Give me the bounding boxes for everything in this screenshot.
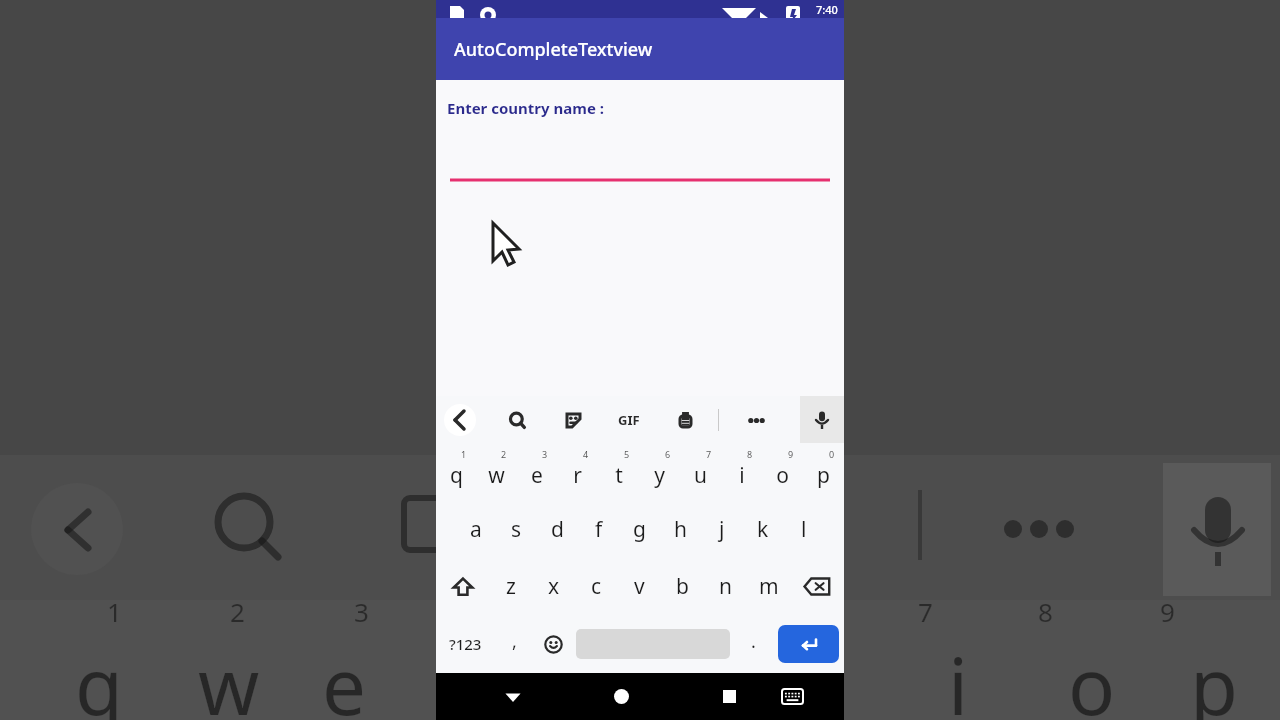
- staticText: h: [674, 515, 687, 544]
- staticText: q: [450, 461, 463, 490]
- staticText: 9: [788, 448, 794, 460]
- staticText: 7:40: [816, 2, 838, 17]
- staticText: ,: [512, 629, 517, 654]
- button[interactable]: z: [489, 558, 532, 615]
- button[interactable]: Stickers: [558, 405, 588, 435]
- button[interactable]: 2: [476, 443, 516, 501]
- staticText: w: [488, 461, 505, 490]
- staticText: s: [511, 515, 522, 544]
- staticText: 3: [542, 448, 548, 460]
- button[interactable]: Home: [594, 673, 648, 720]
- staticText: 9: [1160, 594, 1175, 629]
- staticText: Enter country name :: [447, 98, 604, 118]
- button[interactable]: 5: [598, 443, 639, 501]
- staticText: u: [694, 461, 707, 490]
- button[interactable]: a: [455, 501, 496, 558]
- button[interactable]: More options: [741, 405, 771, 435]
- staticText: n: [719, 572, 732, 601]
- button[interactable]: m: [747, 558, 790, 615]
- staticText: 7: [706, 448, 712, 460]
- button[interactable]: GIF: [614, 405, 644, 435]
- staticText: y: [654, 461, 665, 490]
- staticText: c: [591, 572, 602, 601]
- staticText: x: [548, 572, 560, 601]
- button[interactable]: Recents: [702, 673, 756, 720]
- staticText: i: [739, 461, 745, 490]
- staticText: f: [595, 515, 603, 544]
- staticText: p: [817, 461, 830, 490]
- button[interactable]: g: [619, 501, 660, 558]
- staticText: i: [948, 632, 969, 720]
- button[interactable]: v: [618, 558, 661, 615]
- button[interactable]: j: [701, 501, 742, 558]
- button[interactable]: Back: [444, 404, 476, 436]
- staticText: AutoCompleteTextview: [454, 37, 653, 62]
- staticText: 0: [829, 448, 835, 460]
- staticText: w: [198, 632, 260, 720]
- staticText: r: [573, 461, 582, 490]
- button[interactable]: [450, 154, 830, 184]
- button[interactable]: 7: [680, 443, 721, 501]
- button[interactable]: Backspace: [790, 558, 844, 615]
- button[interactable]: k: [742, 501, 783, 558]
- button[interactable]: Hide keyboard: [486, 673, 540, 720]
- staticText: e: [322, 632, 366, 720]
- button[interactable]: h: [660, 501, 701, 558]
- staticText: 2: [230, 594, 245, 629]
- button[interactable]: Enter: [778, 625, 839, 663]
- staticText: t: [615, 461, 623, 490]
- button[interactable]: c: [575, 558, 618, 615]
- staticText: g: [633, 515, 646, 544]
- button[interactable]: Shift: [436, 558, 489, 615]
- button[interactable]: 3: [516, 443, 557, 501]
- staticText: j: [719, 515, 725, 544]
- button[interactable]: ,: [495, 615, 533, 673]
- button[interactable]: Clipboard: [670, 405, 700, 435]
- staticText: m: [759, 572, 779, 601]
- staticText: 8: [1038, 594, 1053, 629]
- button[interactable]: Search: [502, 405, 532, 435]
- staticText: .: [751, 629, 756, 654]
- button[interactable]: d: [537, 501, 578, 558]
- staticText: 3: [354, 594, 369, 629]
- staticText: 1: [107, 594, 122, 629]
- staticText: b: [676, 572, 689, 601]
- staticText: p: [1190, 632, 1238, 720]
- button[interactable]: s: [496, 501, 537, 558]
- staticText: o: [1068, 632, 1116, 720]
- button[interactable]: ?123: [436, 615, 495, 673]
- button[interactable]: 8: [721, 443, 762, 501]
- staticText: k: [757, 515, 769, 544]
- staticText: 5: [624, 448, 630, 460]
- staticText: 4: [583, 448, 589, 460]
- staticText: ?123: [449, 634, 482, 654]
- button[interactable]: l: [783, 501, 824, 558]
- staticText: o: [776, 461, 789, 490]
- staticText: 2: [501, 448, 507, 460]
- button[interactable]: 4: [557, 443, 598, 501]
- staticText: a: [470, 515, 482, 544]
- staticText: q: [75, 632, 123, 720]
- button[interactable]: 6: [639, 443, 680, 501]
- staticText: e: [531, 461, 543, 490]
- button[interactable]: 0: [803, 443, 844, 501]
- button[interactable]: Voice input: [800, 396, 844, 443]
- button[interactable]: Switch keyboard: [768, 673, 817, 720]
- button[interactable]: 9: [762, 443, 803, 501]
- staticText: 8: [747, 448, 753, 460]
- button[interactable]: b: [661, 558, 704, 615]
- button[interactable]: Emoji: [533, 615, 573, 673]
- button[interactable]: f: [578, 501, 619, 558]
- staticText: 6: [665, 448, 671, 460]
- button[interactable]: 1: [436, 443, 476, 501]
- button[interactable]: n: [704, 558, 747, 615]
- staticText: z: [506, 572, 516, 601]
- staticText: 7: [918, 594, 933, 629]
- staticText: GIF: [618, 411, 640, 429]
- staticText: 1: [461, 448, 467, 460]
- staticText: d: [551, 515, 564, 544]
- button[interactable]: .: [733, 615, 773, 673]
- staticText: v: [634, 572, 645, 601]
- button[interactable]: x: [532, 558, 575, 615]
